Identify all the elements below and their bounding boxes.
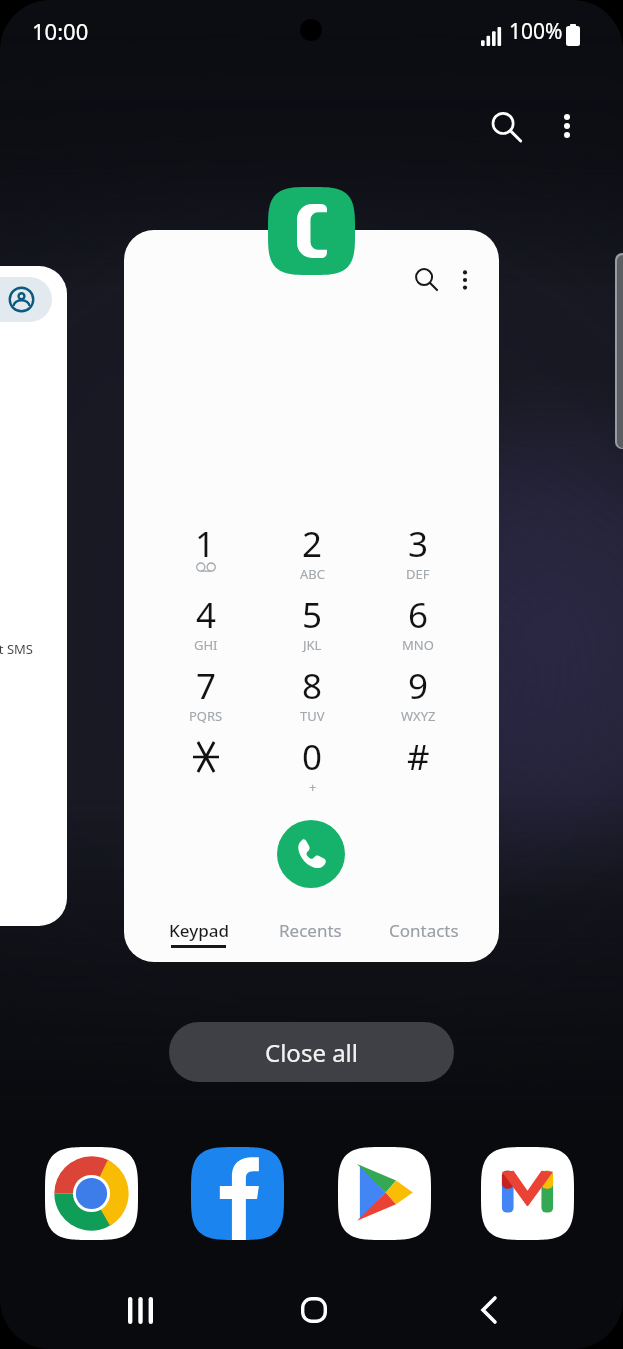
staticText: 1 (195, 520, 216, 568)
staticText: PQRS (189, 707, 223, 725)
staticText: Keypad (169, 919, 229, 942)
staticText: 6 (408, 591, 429, 639)
button[interactable]: 3 (365, 520, 471, 591)
button[interactable]: Close all (169, 1022, 454, 1082)
staticText: WXYZ (401, 707, 436, 725)
button[interactable] (152, 733, 259, 804)
staticText: 9 (408, 662, 429, 710)
button[interactable]: Recents (250, 919, 370, 942)
staticText: 10:00 (32, 16, 89, 46)
button[interactable]: Recents (105, 1275, 175, 1345)
button[interactable]: More options (541, 100, 593, 152)
staticText: ABC (300, 565, 325, 583)
button[interactable]: Contacts (363, 919, 484, 942)
button[interactable]: Back (454, 1275, 524, 1345)
button[interactable]: 4 (152, 591, 259, 662)
staticText: 0 (302, 733, 323, 781)
staticText: 100% (509, 17, 563, 46)
staticText: Close all (265, 1036, 358, 1069)
button[interactable]: Play Store (338, 1147, 431, 1240)
button[interactable]: Call (277, 820, 345, 888)
staticText: 3 (408, 520, 429, 568)
button[interactable]: Keypad (139, 919, 258, 948)
button[interactable]: Search (406, 259, 446, 299)
button[interactable]: 8 (259, 662, 365, 733)
button[interactable]: 7 (152, 662, 259, 733)
staticText: 4 (196, 591, 217, 639)
button[interactable]: Home (279, 1275, 349, 1345)
staticText: 8 (302, 662, 323, 710)
staticText: JKL (303, 636, 322, 654)
staticText: MNO (402, 636, 434, 654)
button[interactable]: 2 (259, 520, 365, 591)
button[interactable]: # (365, 733, 471, 804)
button[interactable]: t SMS (0, 266, 67, 926)
button[interactable]: 0 (259, 733, 365, 804)
button[interactable]: Facebook (191, 1147, 284, 1240)
staticText: 7 (196, 662, 217, 710)
staticText: 5 (302, 591, 323, 639)
button[interactable]: Gmail (481, 1147, 574, 1240)
button[interactable]: 5 (259, 591, 365, 662)
button[interactable]: Search (479, 100, 531, 152)
staticText: 2 (302, 520, 323, 568)
button[interactable]: Search (124, 230, 499, 962)
staticText: + (309, 778, 317, 796)
staticText: GHI (194, 636, 218, 654)
button[interactable]: 9 (365, 662, 471, 733)
button[interactable]: More options (445, 260, 485, 300)
staticText: # (407, 733, 430, 781)
staticText: TUV (300, 707, 325, 725)
staticText: t SMS (0, 640, 33, 658)
button[interactable]: Chrome (45, 1147, 138, 1240)
staticText: Contacts (389, 919, 459, 942)
button[interactable]: 6 (365, 591, 471, 662)
button[interactable]: 1 (152, 520, 259, 591)
staticText: DEF (406, 565, 430, 583)
staticText: Recents (279, 919, 342, 942)
